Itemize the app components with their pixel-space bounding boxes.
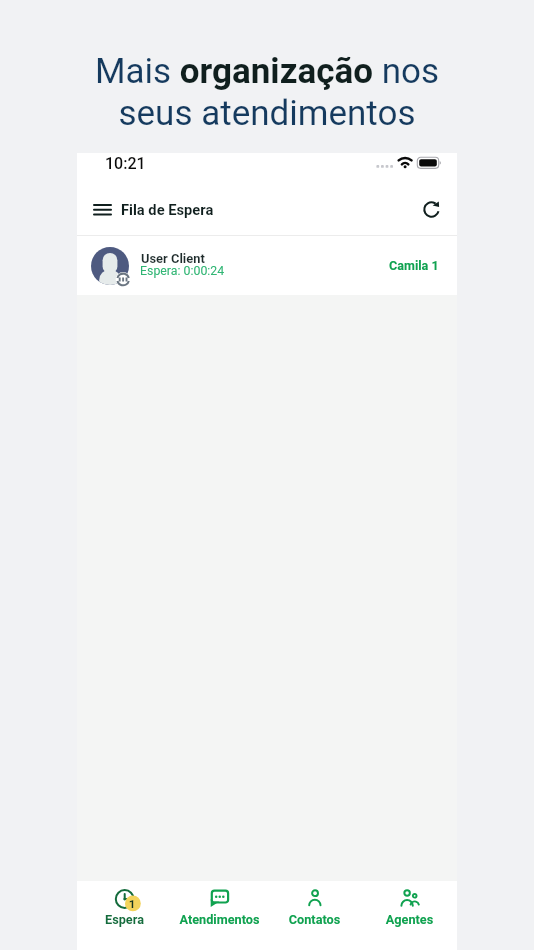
staticText: 1 — [124, 897, 140, 910]
button[interactable]: Espera — [77, 881, 172, 950]
button[interactable]: Open menu — [84, 190, 121, 229]
staticText: Contatos — [267, 912, 362, 927]
staticText: Espera — [77, 912, 172, 927]
staticText: seus atendimentos — [0, 93, 534, 134]
staticText: User Client — [141, 251, 205, 266]
button[interactable]: Agentes — [362, 881, 457, 950]
staticText: Fila de Espera — [121, 201, 214, 218]
button[interactable]: User Client — [77, 236, 457, 295]
staticText: Espera: 0:00:24 — [140, 264, 225, 278]
staticText: Atendimentos — [172, 912, 267, 927]
staticText: Agentes — [362, 912, 457, 927]
staticText: Camila 1 — [389, 258, 439, 273]
button[interactable]: Refresh — [413, 191, 450, 228]
button[interactable]: Contatos — [267, 881, 362, 950]
staticText: 10:21 — [105, 154, 146, 173]
staticText: Mais organização nos — [0, 51, 534, 92]
button[interactable]: Atendimentos — [172, 881, 267, 950]
